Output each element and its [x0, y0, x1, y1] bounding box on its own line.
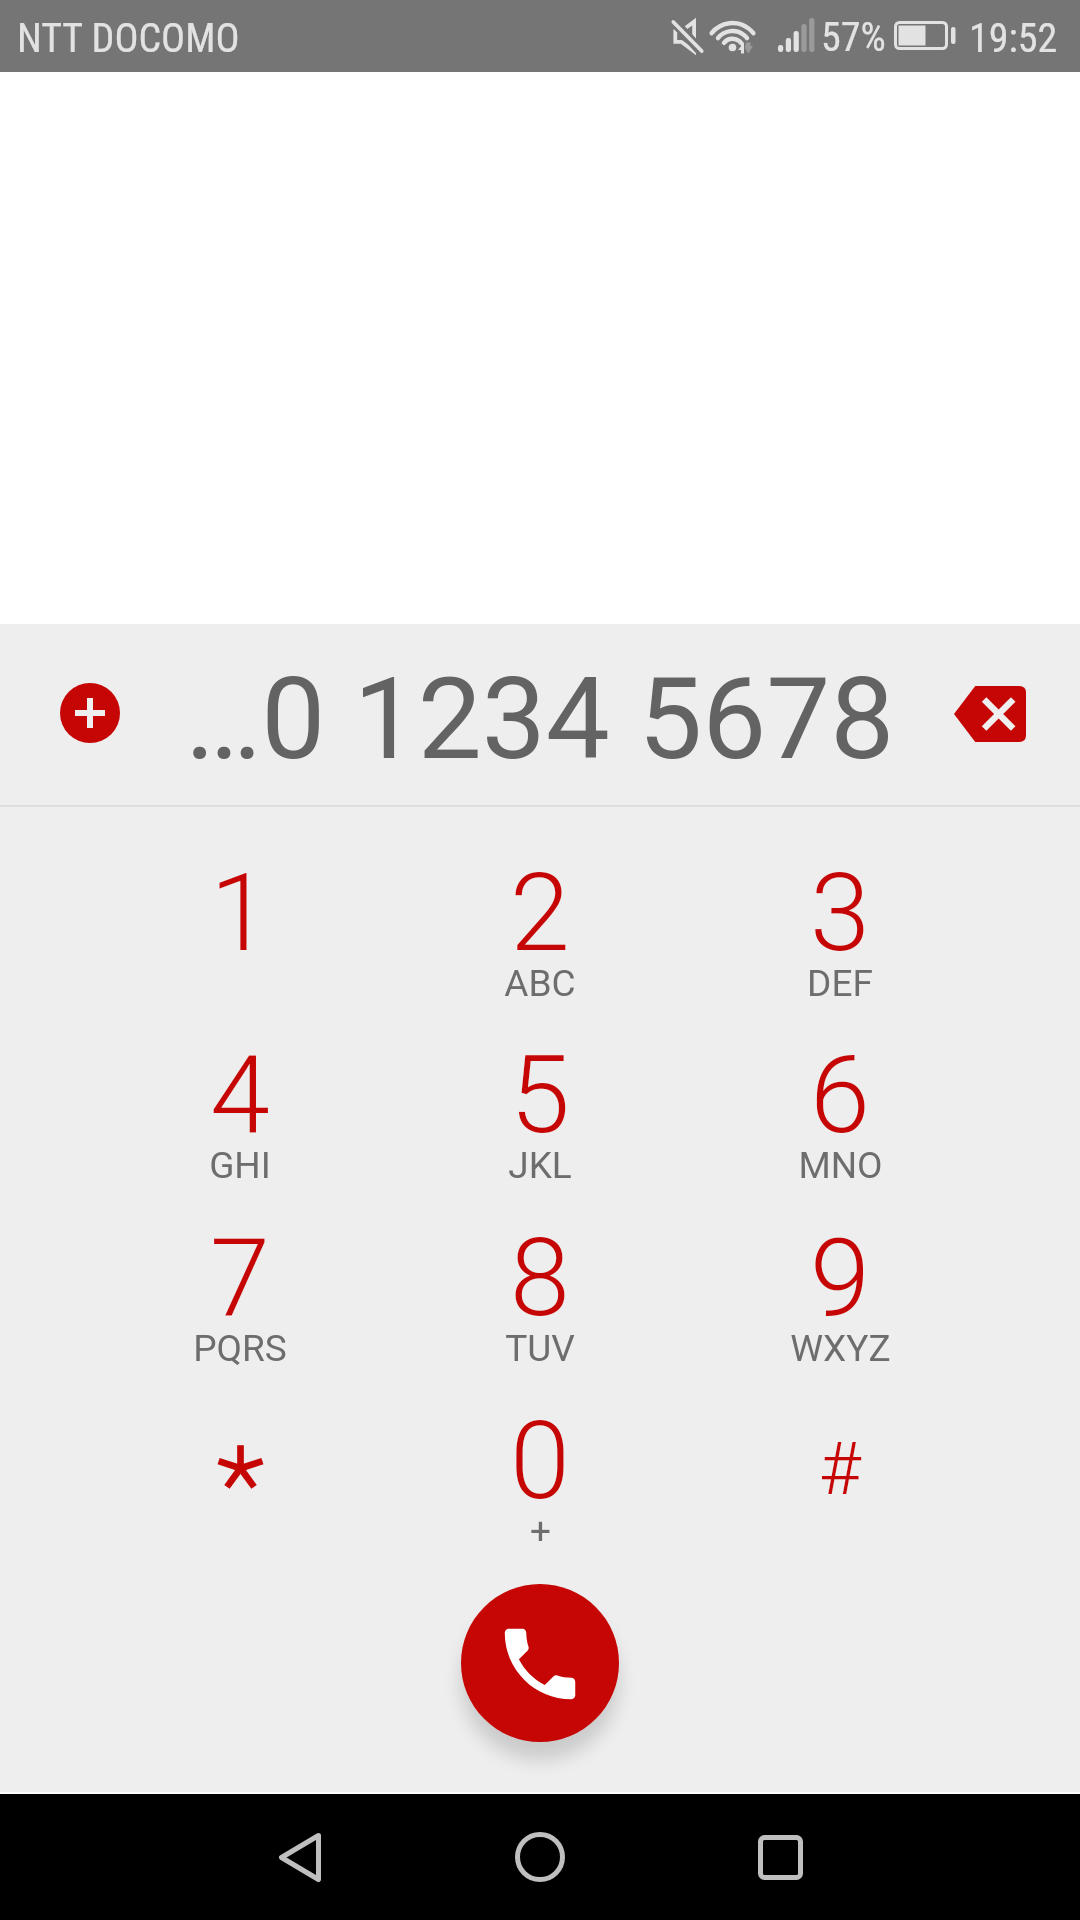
button[interactable]: 3 [690, 842, 990, 1024]
staticText: 9 [810, 1215, 870, 1342]
button[interactable]: # [690, 1390, 990, 1572]
staticText: 5 [510, 1032, 570, 1159]
button[interactable]: 4 [90, 1024, 390, 1206]
staticText: 1 [210, 850, 270, 977]
button[interactable]: 1 [90, 842, 390, 1024]
staticText: # [819, 1427, 861, 1511]
button[interactable] [90, 1390, 390, 1572]
staticText: WXYZ [790, 1327, 891, 1370]
button[interactable]: 9 [690, 1207, 990, 1389]
button[interactable]: Home [480, 1797, 600, 1917]
staticText: 2 [510, 850, 570, 977]
staticText: MNO [798, 1144, 883, 1187]
staticText: PQRS [193, 1327, 287, 1370]
staticText: ABC [504, 962, 576, 1005]
staticText: 8 [510, 1215, 570, 1342]
button[interactable]: 6 [690, 1024, 990, 1206]
button[interactable]: Backspace [954, 686, 1026, 742]
staticText: + [530, 1510, 551, 1553]
button[interactable]: 2 [390, 842, 690, 1024]
staticText: …0 1234 5678 [185, 652, 895, 786]
button[interactable]: Add [60, 683, 120, 743]
button[interactable]: Recents [720, 1797, 840, 1917]
button[interactable]: 8 [390, 1207, 690, 1389]
staticText: 19:52 [969, 15, 1058, 62]
staticText: 4 [210, 1032, 270, 1159]
staticText: 7 [210, 1215, 270, 1342]
button[interactable]: 0 [390, 1390, 690, 1572]
button[interactable]: Back [240, 1797, 360, 1917]
staticText: 0 [510, 1398, 570, 1525]
staticText: TUV [505, 1327, 575, 1370]
button[interactable]: Call [461, 1584, 619, 1742]
button[interactable]: 5 [390, 1024, 690, 1206]
staticText: JKL [508, 1144, 572, 1187]
staticText: DEF [807, 962, 873, 1005]
button[interactable]: 7 [90, 1207, 390, 1389]
staticText: 3 [810, 850, 870, 977]
staticText: GHI [209, 1144, 271, 1187]
staticText: 6 [810, 1032, 870, 1159]
staticText: NTT DOCOMO [17, 15, 240, 62]
staticText: 57% [821, 14, 886, 61]
